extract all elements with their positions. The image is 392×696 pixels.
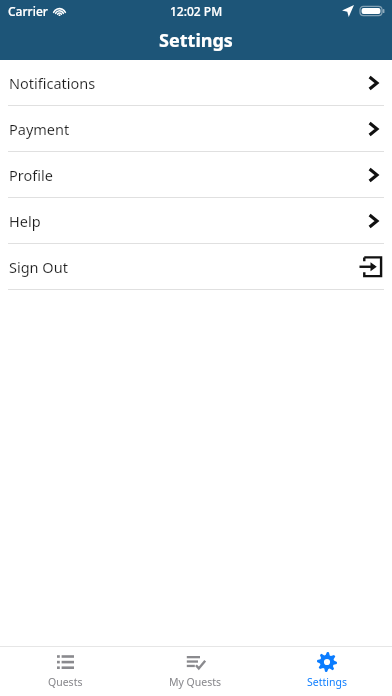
staticText: Notifications (9, 73, 96, 93)
other: Quests (55, 652, 75, 672)
button[interactable]: Sign Out (0, 244, 392, 289)
other: My Quests (186, 652, 206, 672)
staticText: 12:02 PM (170, 3, 223, 19)
staticText: My Quests (169, 675, 222, 689)
button[interactable]: My Quests (130, 647, 261, 696)
button[interactable]: Payment (0, 106, 392, 151)
button[interactable]: Profile (0, 152, 392, 197)
staticText: Carrier (8, 3, 48, 19)
button[interactable]: Notifications (0, 60, 392, 105)
staticText: Quests (48, 675, 83, 689)
staticText: Payment (9, 119, 70, 139)
staticText: Help (9, 211, 41, 231)
staticText: Settings (0, 28, 392, 53)
staticText: Profile (9, 165, 53, 185)
button[interactable]: Quests (0, 647, 130, 696)
other: Settings (317, 652, 337, 672)
staticText: Sign Out (9, 257, 68, 277)
staticText: Settings (307, 675, 347, 689)
button[interactable]: Help (0, 198, 392, 243)
button[interactable]: Settings (261, 647, 392, 696)
